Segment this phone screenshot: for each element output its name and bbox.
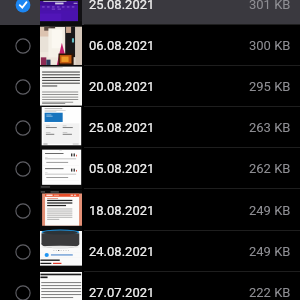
staticText: 262 KB: [249, 161, 291, 176]
button[interactable]: Select item: [0, 66, 300, 107]
staticText: 295 KB: [249, 79, 291, 94]
button[interactable]: Select item: [0, 190, 300, 231]
button[interactable]: Selected: [0, 0, 300, 25]
staticText: 06.08.2021: [89, 38, 155, 53]
button[interactable]: Select item: [0, 231, 300, 272]
other: Select item: [0, 231, 40, 272]
staticText: 25.08.2021: [89, 0, 155, 12]
other: Selected: [0, 0, 40, 25]
staticText: 05.08.2021: [89, 161, 155, 176]
other: Select item: [0, 272, 40, 300]
button[interactable]: Select item: [0, 107, 300, 148]
other: Select item: [0, 25, 40, 66]
staticText: 18.08.2021: [89, 203, 155, 218]
staticText: 301 KB: [249, 0, 291, 12]
staticText: 27.07.2021: [89, 285, 155, 300]
staticText: 249 KB: [249, 244, 291, 259]
staticText: 263 KB: [249, 120, 291, 135]
staticText: 300 KB: [249, 38, 291, 53]
staticText: 222 KB: [249, 285, 291, 300]
staticText: 249 KB: [249, 203, 291, 218]
other: Select item: [0, 66, 40, 107]
other: Select item: [0, 107, 40, 148]
staticText: 24.08.2021: [89, 244, 155, 259]
button[interactable]: Select item: [0, 25, 300, 66]
staticText: 20.08.2021: [89, 79, 155, 94]
button[interactable]: Select item: [0, 148, 300, 189]
button[interactable]: Select item: [0, 272, 300, 300]
other: Select item: [0, 148, 40, 189]
staticText: 25.08.2021: [89, 120, 155, 135]
other: Select item: [0, 190, 40, 231]
